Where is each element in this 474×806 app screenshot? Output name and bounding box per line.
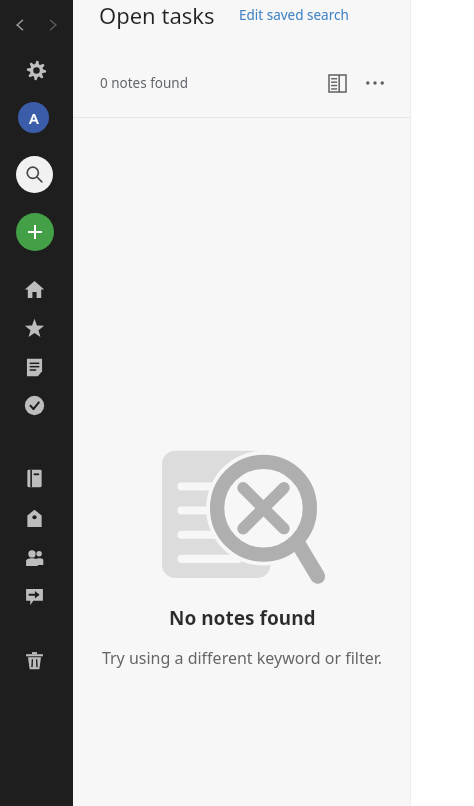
staticText: Open tasks: [99, 0, 215, 30]
button[interactable]: Notebooks: [16, 460, 53, 497]
button[interactable]: Shared by me: [16, 578, 53, 615]
button[interactable]: Open tasks: [99, 0, 215, 30]
staticText: Edit saved search: [239, 6, 349, 24]
button[interactable]: Search: [16, 156, 53, 193]
button[interactable]: Notes: [16, 349, 53, 386]
button[interactable]: Home: [16, 271, 53, 308]
button[interactable]: Shared with me: [16, 539, 53, 576]
staticText: A: [29, 108, 39, 128]
button[interactable]: Account: [18, 102, 49, 133]
staticText: No notes found: [169, 605, 316, 631]
button[interactable]: Tags: [16, 500, 53, 537]
button[interactable]: Shortcuts: [16, 310, 53, 347]
button[interactable]: Change view: [320, 66, 354, 100]
staticText: 0 notes found: [100, 74, 189, 92]
staticText: Try using a different keyword or filter.: [97, 647, 387, 669]
button[interactable]: Settings: [18, 52, 55, 89]
button[interactable]: More options: [358, 66, 392, 100]
button[interactable]: Edit saved search: [239, 2, 349, 28]
button[interactable]: New note: [16, 213, 54, 251]
button[interactable]: Tasks: [16, 387, 53, 424]
button[interactable]: Forward: [39, 11, 67, 39]
button[interactable]: Back: [6, 11, 34, 39]
button[interactable]: Trash: [16, 642, 53, 679]
